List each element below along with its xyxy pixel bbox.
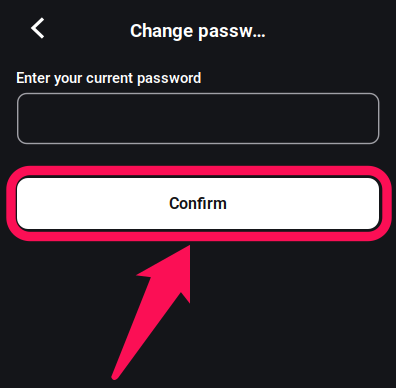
button[interactable]: Confirm [17,178,379,229]
button[interactable]: Back [16,6,60,50]
staticText: Enter your current password [16,69,201,87]
staticText: Change passw… [130,20,266,41]
staticText: Confirm [169,194,227,213]
button[interactable]: Current password [18,93,379,143]
